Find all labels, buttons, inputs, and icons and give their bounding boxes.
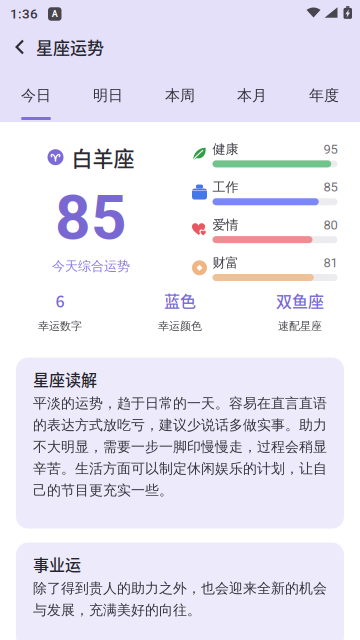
staticText: 幸运数字 bbox=[38, 319, 82, 333]
staticText: 1:36 bbox=[10, 6, 38, 22]
staticText: 80 bbox=[323, 217, 337, 232]
staticText: 爱情 bbox=[212, 217, 238, 233]
staticText: 明日 bbox=[93, 86, 123, 105]
button[interactable]: 本周 bbox=[144, 66, 216, 122]
staticText: 今日 bbox=[21, 86, 51, 105]
staticText: 幸运颜色 bbox=[158, 319, 202, 333]
staticText: A bbox=[52, 9, 58, 19]
button[interactable]: 年度 bbox=[288, 66, 360, 122]
staticText: 6 bbox=[55, 289, 64, 312]
button[interactable]: 明日 bbox=[72, 66, 144, 122]
staticText: 财富 bbox=[212, 255, 238, 271]
staticText: 85 bbox=[323, 179, 337, 195]
button[interactable]: 本月 bbox=[216, 66, 288, 122]
button[interactable]: Back bbox=[0, 28, 36, 66]
staticText: 今天综合运势 bbox=[52, 258, 130, 274]
staticText: 星座运势 bbox=[36, 35, 104, 59]
staticText: 双鱼座 bbox=[276, 289, 324, 312]
staticText: 95 bbox=[323, 142, 337, 157]
staticText: 81 bbox=[323, 255, 337, 270]
staticText: 本月 bbox=[237, 86, 267, 105]
staticText: 蓝色 bbox=[164, 289, 196, 312]
staticText: 白羊座 bbox=[71, 142, 134, 172]
staticText: 年度 bbox=[309, 86, 339, 105]
staticText: 85 bbox=[55, 181, 127, 254]
staticText: 平淡的运势，趋于日常的一天。容易在直言直语的表达方式放吃亏，建议少说话多做实事。… bbox=[33, 395, 327, 499]
staticText: 星座读解 bbox=[33, 367, 97, 391]
staticText: 工作 bbox=[212, 179, 238, 195]
staticText: 健康 bbox=[212, 141, 238, 157]
staticText: 除了得到贵人的助力之外，也会迎来全新的机会与发展，充满美好的向往。 bbox=[33, 580, 327, 619]
staticText: 本周 bbox=[165, 86, 195, 105]
staticText: 速配星座 bbox=[278, 319, 322, 333]
button[interactable]: 今日 bbox=[0, 66, 72, 122]
staticText: 事业运 bbox=[33, 552, 81, 576]
